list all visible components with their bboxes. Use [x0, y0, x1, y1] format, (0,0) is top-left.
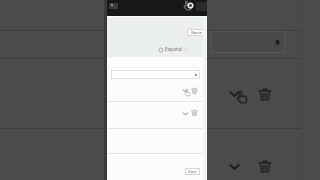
- staticText: Name: [191, 30, 202, 35]
- staticText: Save: [188, 169, 197, 174]
- button[interactable]: Expand: [228, 160, 241, 173]
- button[interactable]: [211, 31, 285, 53]
- button[interactable]: Account: [186, 1, 195, 10]
- button[interactable]: Delete: [258, 87, 272, 101]
- button[interactable]: Delete: [258, 159, 272, 173]
- button[interactable]: Expand: [182, 87, 189, 94]
- button[interactable]: Expand: [182, 110, 189, 117]
- button[interactable]: Delete: [191, 109, 198, 116]
- button[interactable]: [111, 70, 200, 79]
- staticText: Expand: [165, 46, 182, 53]
- button[interactable]: Name: [187, 29, 205, 36]
- button[interactable]: Expand: [228, 87, 241, 100]
- button[interactable]: Save: [185, 168, 200, 175]
- button[interactable]: Delete: [191, 87, 198, 94]
- button[interactable]: Expand: [159, 46, 188, 53]
